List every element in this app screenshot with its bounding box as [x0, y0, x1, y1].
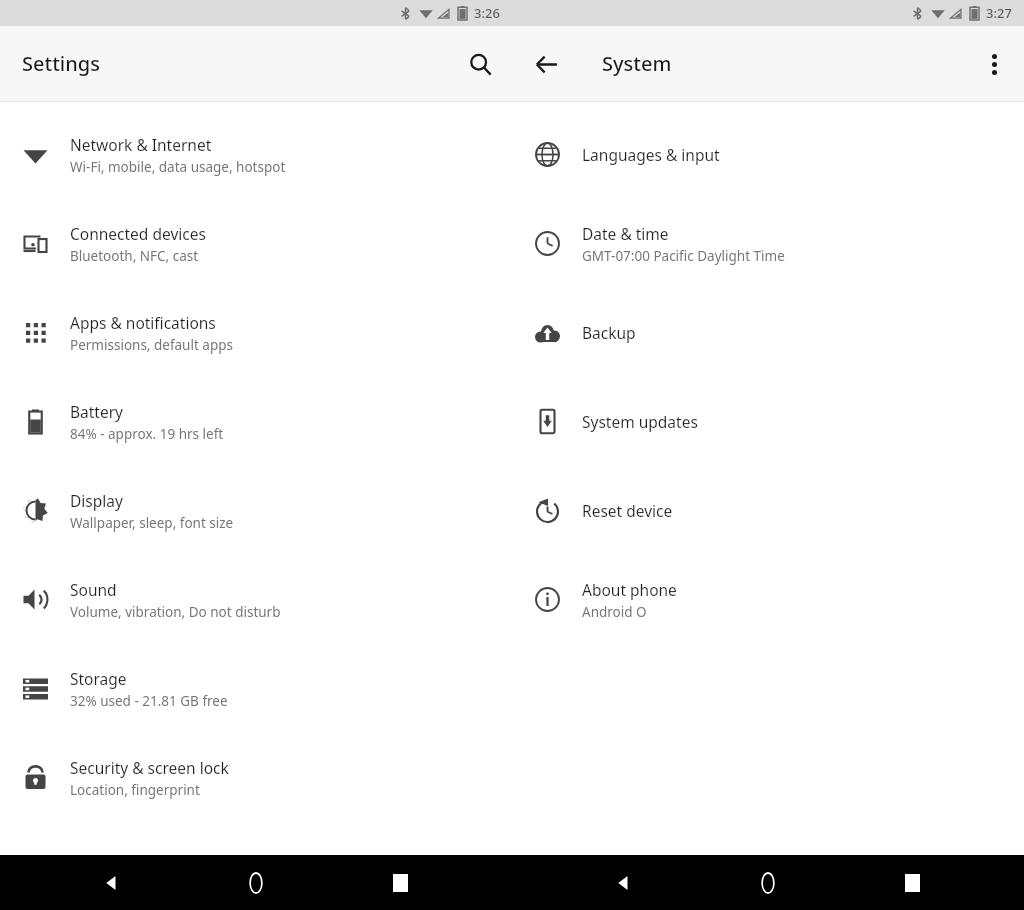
staticText: Date & time [582, 223, 669, 244]
button[interactable]: About phone [512, 555, 1024, 644]
staticText: Connected devices [70, 223, 206, 244]
button[interactable]: Home [218, 855, 294, 910]
button[interactable]: User & accounts [0, 822, 512, 910]
staticText: Wi-Fi, mobile, data usage, hotspot [70, 158, 286, 176]
button[interactable]: Apps & notifications [0, 288, 512, 377]
staticText: System updates [582, 411, 698, 432]
staticText: Languages & input [582, 144, 720, 165]
staticText: About phone [582, 579, 677, 600]
staticText: Settings [22, 50, 100, 77]
staticText: Apps & notifications [70, 312, 216, 333]
button[interactable]: Display [0, 466, 512, 555]
button[interactable]: Sound [0, 555, 512, 644]
button[interactable]: Battery [0, 377, 512, 466]
staticText: 3:27 [986, 4, 1012, 22]
staticText: Display [70, 490, 123, 511]
button[interactable]: Connected devices [0, 199, 512, 288]
button[interactable]: Home [730, 855, 806, 910]
button[interactable]: System updates [512, 377, 1024, 466]
staticText: Bluetooth, NFC, cast [70, 247, 199, 265]
button[interactable]: Recents [874, 855, 950, 910]
staticText: Volume, vibration, Do not disturb [70, 603, 281, 621]
button[interactable]: Reset device [512, 466, 1024, 555]
staticText: Wallpaper, sleep, font size [70, 514, 234, 532]
staticText: Sound [70, 579, 117, 600]
staticText: Security & screen lock [70, 757, 229, 778]
staticText: Reset device [582, 500, 673, 521]
staticText: GMT-07:00 Pacific Daylight Time [582, 247, 785, 265]
button[interactable]: Network & Internet [0, 110, 512, 199]
staticText: 32% used - 21.81 GB free [70, 692, 228, 710]
button[interactable]: Languages & input [512, 110, 1024, 199]
staticText: Backup [582, 322, 636, 343]
button[interactable]: Back [74, 855, 150, 910]
staticText: Storage [70, 668, 127, 689]
staticText: 3:26 [474, 4, 500, 22]
button[interactable]: Back [586, 855, 662, 910]
button[interactable]: Date & time [512, 199, 1024, 288]
staticText: Battery [70, 401, 124, 422]
staticText: 84% - approx. 19 hrs left [70, 425, 224, 443]
staticText: Permissions, default apps [70, 336, 233, 354]
staticText: System [602, 50, 672, 77]
button[interactable]: Back [520, 38, 572, 90]
button[interactable]: Backup [512, 288, 1024, 377]
button[interactable]: Search [454, 38, 506, 90]
button[interactable]: More options [968, 38, 1020, 90]
button[interactable]: Storage [0, 644, 512, 733]
button[interactable]: Recents [362, 855, 438, 910]
staticText: Android O [582, 603, 647, 621]
staticText: Location, fingerprint [70, 781, 200, 799]
button[interactable]: Security & screen lock [0, 733, 512, 822]
staticText: Network & Internet [70, 134, 212, 155]
